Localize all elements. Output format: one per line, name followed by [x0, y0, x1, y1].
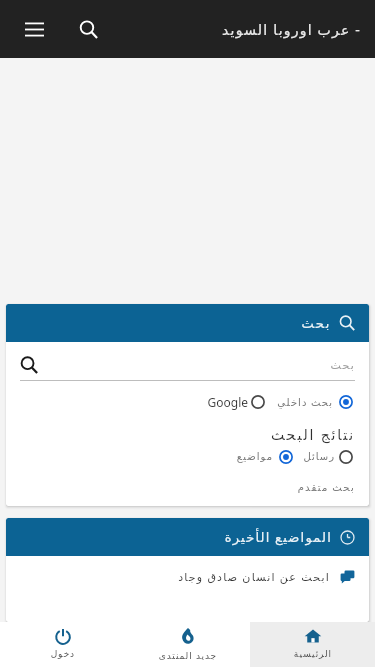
- button[interactable]: Menu: [14, 9, 54, 49]
- button[interactable]: مواضيع: [236, 448, 295, 466]
- staticText: رسائل: [303, 451, 335, 463]
- staticText: بحث: [301, 316, 331, 331]
- staticText: بحث: [330, 359, 355, 372]
- button[interactable]: رسائل: [303, 448, 355, 466]
- button[interactable]: بحث: [20, 356, 355, 374]
- button[interactable]: بحث متقدم: [20, 480, 355, 494]
- staticText: بحث داخلي: [277, 395, 333, 409]
- button[interactable]: دخول: [0, 622, 125, 667]
- button[interactable]: بحث: [6, 304, 369, 342]
- staticText: Google: [207, 394, 248, 410]
- staticText: الرئيسية: [293, 649, 332, 659]
- button[interactable]: ابحث عن انسان صادق وجاد: [6, 556, 369, 596]
- staticText: مواضيع: [236, 451, 273, 463]
- button[interactable]: المواضيع الأخيرة: [6, 518, 369, 556]
- staticText: جديد المنتدى: [158, 649, 217, 661]
- button[interactable]: الرئيسية: [250, 622, 375, 667]
- button[interactable]: Google: [207, 393, 267, 411]
- staticText: ابحث عن انسان صادق وجاد: [178, 569, 330, 584]
- staticText: بحث متقدم: [297, 480, 355, 494]
- button[interactable]: Search: [68, 9, 108, 49]
- staticText: المواضيع الأخيرة: [224, 528, 332, 546]
- button[interactable]: جديد المنتدى: [125, 622, 250, 667]
- staticText: عرب اوروبا السويد -: [222, 20, 361, 39]
- staticText: نتائج البحث: [271, 425, 355, 444]
- button[interactable]: بحث داخلي: [277, 393, 355, 411]
- staticText: دخول: [50, 649, 75, 659]
